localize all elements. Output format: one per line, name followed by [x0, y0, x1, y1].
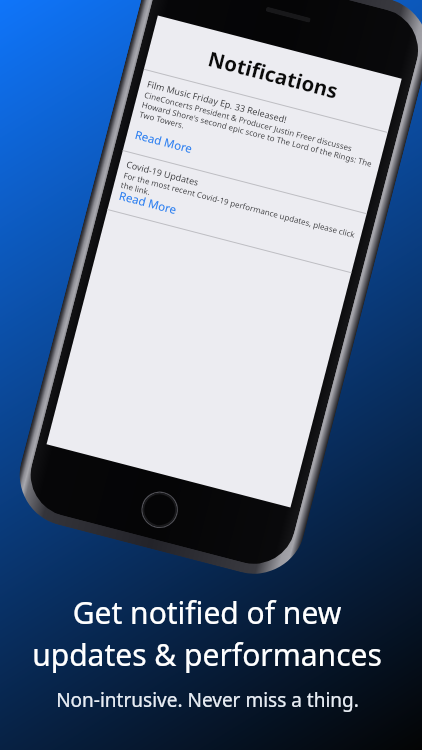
staticText: Read More	[117, 188, 178, 218]
staticText: Film Music Friday Ep. 33 Released!	[146, 77, 288, 125]
staticText: Covid-19 Updates	[125, 158, 201, 188]
staticText: For the most recent Covid-19 performance…	[120, 169, 360, 251]
staticText: Read More	[133, 127, 194, 157]
staticText: Get notified of new updates & performanc…	[32, 592, 382, 675]
button[interactable]: Read More	[129, 120, 252, 177]
staticText: CineConcerts President & Producer Justin…	[138, 89, 381, 180]
staticText: Non-intrusive. Never miss a thing.	[56, 687, 359, 713]
staticText: Notifications	[205, 44, 341, 105]
button[interactable]: Read More	[113, 181, 236, 238]
